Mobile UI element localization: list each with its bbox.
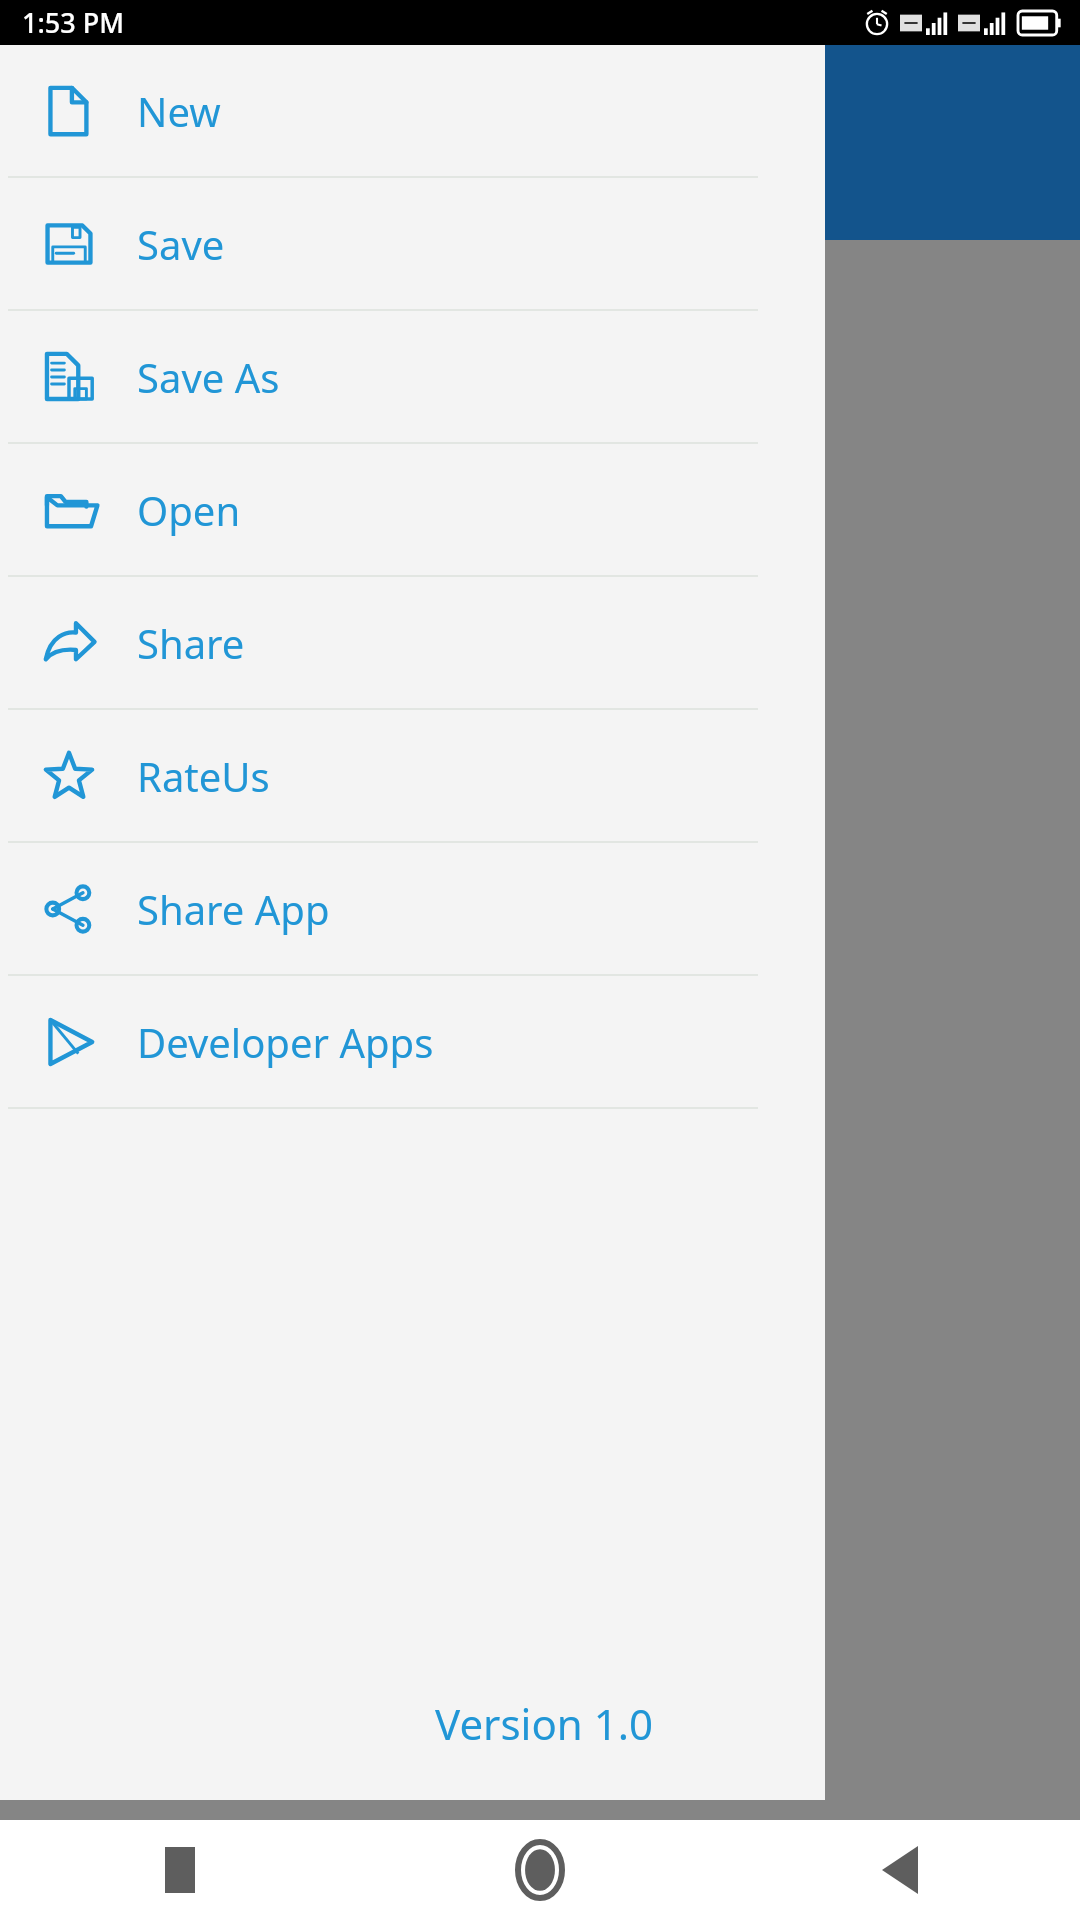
staticText: Save bbox=[137, 217, 225, 271]
button[interactable]: Home bbox=[360, 1820, 720, 1920]
button[interactable]: Recent apps bbox=[0, 1820, 360, 1920]
button[interactable]: Back bbox=[720, 1820, 1080, 1920]
staticText: Share bbox=[137, 616, 245, 670]
staticText: Developer Apps bbox=[137, 1015, 434, 1069]
button[interactable]: Save bbox=[0, 178, 825, 309]
staticText: RateUs bbox=[137, 749, 270, 803]
button[interactable]: Share App bbox=[0, 843, 825, 974]
button[interactable]: Save As bbox=[0, 311, 825, 442]
button[interactable]: Open bbox=[0, 444, 825, 575]
button[interactable]: RateUs bbox=[0, 710, 825, 841]
staticText: Version 1.0 bbox=[0, 1695, 653, 1752]
staticText: New bbox=[137, 84, 221, 138]
button[interactable]: Share bbox=[0, 577, 825, 708]
staticText: Open bbox=[137, 483, 241, 537]
staticText: Share App bbox=[137, 882, 330, 936]
button[interactable]: Developer Apps bbox=[0, 976, 825, 1107]
staticText: 1:53 PM bbox=[22, 4, 124, 41]
button[interactable]: New bbox=[0, 45, 825, 176]
staticText: Save As bbox=[137, 350, 280, 404]
